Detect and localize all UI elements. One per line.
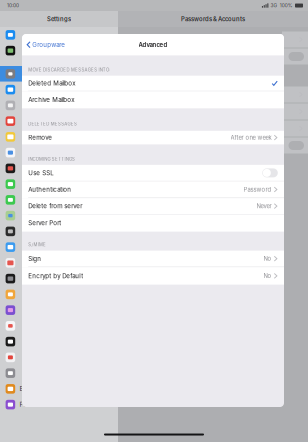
button[interactable] [0,160,118,176]
button[interactable]: Encrypt by Default [22,267,284,285]
staticText: 3G [271,3,278,8]
button[interactable]: Authentication [22,181,284,198]
button[interactable]: Deleted Mailbox [22,76,284,91]
button[interactable] [0,43,118,59]
button[interactable] [0,66,118,82]
button[interactable] [0,318,118,334]
staticText: No [264,272,272,279]
staticText: Encrypt by Default [28,272,83,280]
button[interactable] [0,145,118,161]
staticText: Sign [28,255,41,262]
staticText: Archive Mailbox [28,96,74,103]
staticText: Podcasts [19,401,46,408]
button[interactable]: Books [0,381,118,397]
button[interactable] [0,192,118,208]
staticText: Use SSL [28,169,53,177]
staticText: Remove [28,134,52,141]
button[interactable]: Delete from server [22,198,284,215]
button[interactable] [0,208,118,224]
staticText: MOVE DISCARDED MESSAGES INTO: [28,67,110,72]
button[interactable] [0,97,118,113]
staticText: Groupware [32,41,65,48]
button[interactable] [0,223,118,239]
staticText: Authentication [28,186,71,193]
staticText: S/MIME [28,242,46,247]
staticText: Server Port [28,219,61,227]
button[interactable]: Sign [22,251,284,267]
button[interactable]: Podcasts [0,397,118,413]
staticText: After one week [231,134,272,141]
staticText: Passwords & Accounts [181,15,245,23]
staticText: Password [244,186,272,193]
staticText: Never [257,203,272,210]
staticText: Settings [47,15,71,23]
button[interactable]: Archive Mailbox [22,91,284,108]
button[interactable] [0,349,118,365]
staticText: DELETED MESSAGES [28,121,77,127]
button[interactable]: Remove [22,131,284,144]
button[interactable] [0,334,118,350]
button[interactable] [0,255,118,271]
button[interactable] [0,302,118,318]
staticText: 10:00 [7,3,19,8]
staticText: Books [19,385,37,393]
button[interactable] [0,82,118,98]
button[interactable] [0,239,118,255]
button[interactable] [0,286,118,302]
staticText: No [264,255,272,262]
button[interactable]: Groupware [22,34,70,55]
button[interactable] [0,113,118,129]
button[interactable]: Server Port [22,215,284,232]
staticText: 100% [280,3,293,8]
button[interactable] [0,271,118,287]
staticText: INCOMING SETTINGS [28,156,75,162]
button[interactable] [0,176,118,192]
staticText: Delete from server [28,202,82,210]
button[interactable] [0,27,118,43]
staticText: Deleted Mailbox [28,79,75,87]
button[interactable] [0,129,118,145]
staticText: Advanced [138,41,167,48]
button[interactable] [0,365,118,381]
